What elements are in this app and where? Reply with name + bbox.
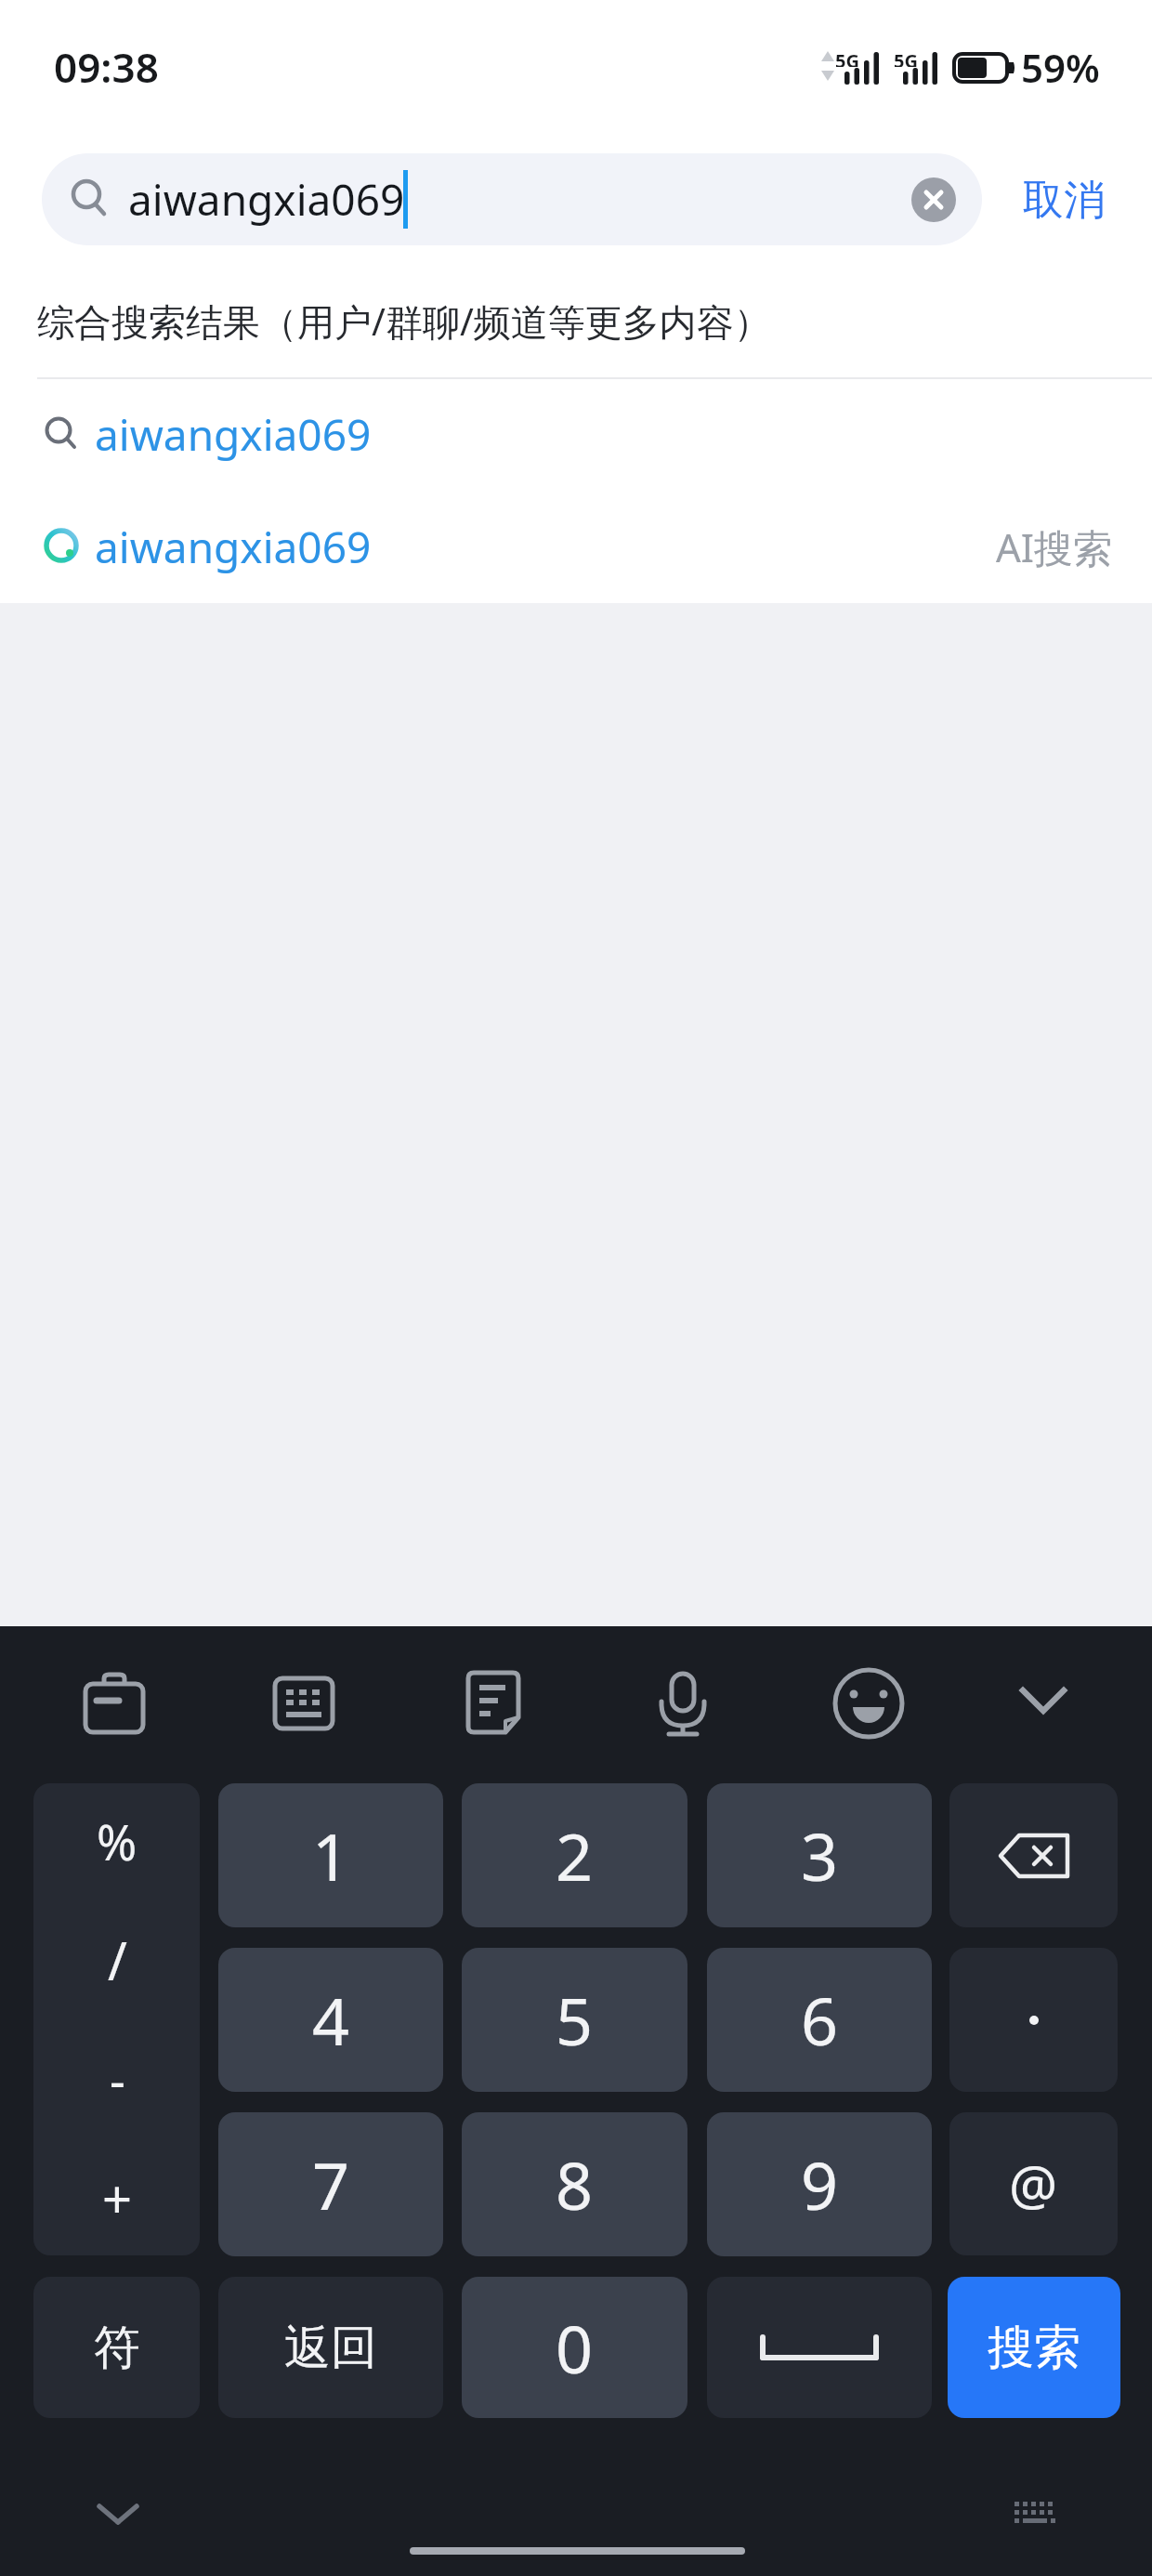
button[interactable]: 0 <box>462 2277 687 2418</box>
staticText: 5 <box>556 1976 594 2064</box>
staticText: 符 <box>94 2319 140 2377</box>
button[interactable] <box>466 1671 520 1736</box>
staticText: 7 <box>312 2140 350 2228</box>
button[interactable]: 符 <box>33 2277 200 2418</box>
staticText: 3 <box>801 1811 839 1899</box>
staticText: + <box>102 2162 133 2233</box>
button[interactable]: 9 <box>707 2112 932 2256</box>
staticText: 取消 <box>1023 175 1105 226</box>
button[interactable] <box>832 1667 905 1740</box>
staticText: 59% <box>1021 41 1100 94</box>
button[interactable] <box>273 1676 334 1730</box>
staticText: / <box>108 1925 127 1995</box>
button[interactable] <box>1020 1687 1067 1718</box>
staticText: aiwangxia069 <box>95 405 372 464</box>
button[interactable]: 5 <box>462 1948 687 2092</box>
button[interactable] <box>42 153 982 245</box>
staticText: 返回 <box>284 2319 377 2377</box>
staticText: 搜索 <box>988 2319 1080 2377</box>
staticText: 6 <box>801 1976 839 2064</box>
button[interactable]: 4 <box>218 1948 443 2092</box>
button[interactable]: 2 <box>462 1783 687 1927</box>
button[interactable] <box>84 1671 145 1736</box>
staticText: 1 <box>312 1811 350 1899</box>
staticText: 0 <box>556 2304 594 2392</box>
button[interactable] <box>949 1783 1118 1927</box>
button[interactable] <box>0 379 1152 491</box>
staticText: % <box>97 1808 137 1874</box>
staticText: AI搜索 <box>996 520 1113 573</box>
staticText: 5G <box>894 48 918 67</box>
button[interactable]: 8 <box>462 2112 687 2256</box>
staticText: 5G <box>835 48 859 67</box>
button[interactable] <box>949 1948 1118 2092</box>
staticText: 综合搜索结果（用户/群聊/频道等更多内容） <box>37 296 771 347</box>
button[interactable]: 返回 <box>218 2277 443 2418</box>
staticText: 2 <box>556 1811 594 1899</box>
staticText: aiwangxia069 <box>95 518 372 576</box>
staticText: 09:38 <box>54 39 159 95</box>
button[interactable]: 取消 <box>1008 167 1119 232</box>
staticText: @ <box>1009 2148 1058 2221</box>
button[interactable] <box>1013 2498 1057 2528</box>
button[interactable]: 7 <box>218 2112 443 2256</box>
button[interactable]: 6 <box>707 1948 932 2092</box>
button[interactable] <box>707 2277 932 2418</box>
staticText: 8 <box>556 2140 594 2228</box>
button[interactable] <box>96 2498 140 2528</box>
staticText: - <box>110 2046 125 2112</box>
button[interactable]: 搜索 <box>948 2277 1120 2418</box>
button[interactable] <box>660 1672 704 1739</box>
staticText: aiwangxia069 <box>128 170 405 229</box>
button[interactable] <box>0 491 1152 602</box>
button[interactable]: 3 <box>707 1783 932 1927</box>
button[interactable] <box>33 1783 200 2255</box>
button[interactable]: 1 <box>218 1783 443 1927</box>
staticText: 9 <box>801 2140 839 2228</box>
staticText: 4 <box>312 1976 350 2064</box>
button[interactable]: @ <box>949 2112 1118 2255</box>
